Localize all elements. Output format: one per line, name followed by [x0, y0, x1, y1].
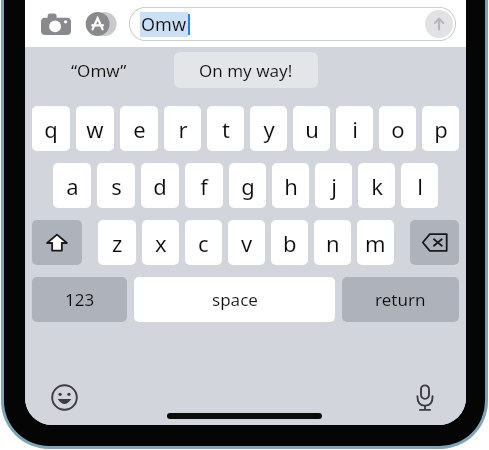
button[interactable]: j — [315, 163, 352, 208]
staticText: h — [284, 171, 298, 201]
staticText: s — [111, 171, 122, 201]
button[interactable]: i — [336, 106, 373, 151]
staticText: u — [305, 114, 319, 144]
button[interactable]: y — [250, 106, 287, 151]
button[interactable]: s — [97, 163, 135, 208]
staticText: return — [375, 288, 426, 311]
staticText: b — [283, 228, 297, 258]
button[interactable]: Camera — [39, 7, 73, 41]
button[interactable]: h — [272, 163, 309, 208]
button[interactable]: w — [76, 106, 114, 151]
button[interactable]: g — [229, 163, 266, 208]
button[interactable]: c — [185, 220, 222, 265]
staticText: c — [198, 228, 209, 258]
staticText: space — [212, 288, 258, 311]
button[interactable]: u — [293, 106, 330, 151]
button[interactable]: z — [98, 220, 136, 265]
button[interactable]: “Omw” — [25, 47, 172, 93]
staticText: l — [417, 171, 423, 201]
staticText: i — [352, 114, 358, 144]
button[interactable]: b — [271, 220, 308, 265]
staticText: r — [178, 114, 188, 144]
staticText: a — [66, 171, 79, 201]
staticText: m — [365, 228, 386, 258]
button[interactable]: p — [422, 106, 459, 151]
staticText: e — [133, 114, 146, 144]
staticText: d — [153, 171, 167, 201]
button[interactable]: Apps — [83, 7, 117, 41]
button[interactable]: x — [142, 220, 179, 265]
button[interactable]: a — [53, 163, 91, 208]
button[interactable]: f — [185, 163, 223, 208]
staticText: t — [222, 114, 230, 144]
button[interactable]: m — [357, 220, 394, 265]
staticText: v — [241, 228, 253, 258]
button[interactable]: q — [32, 106, 70, 151]
button[interactable]: Shift — [32, 220, 82, 265]
button[interactable]: r — [164, 106, 201, 151]
button[interactable]: d — [141, 163, 179, 208]
staticText: w — [86, 114, 104, 144]
staticText: “Omw” — [71, 59, 127, 82]
button[interactable]: l — [401, 163, 438, 208]
button[interactable]: return — [342, 277, 459, 322]
button[interactable]: Emoji — [47, 380, 81, 414]
staticText: n — [326, 228, 340, 258]
button[interactable]: Omw — [129, 7, 456, 41]
button[interactable]: On my way! — [174, 52, 318, 88]
staticText: 123 — [65, 288, 95, 311]
staticText: g — [241, 171, 255, 201]
button[interactable]: e — [120, 106, 158, 151]
button[interactable]: Send — [425, 10, 453, 38]
button[interactable]: o — [379, 106, 416, 151]
staticText: f — [200, 171, 208, 201]
staticText: y — [263, 114, 275, 144]
staticText: j — [331, 171, 337, 201]
staticText: k — [371, 171, 383, 201]
button[interactable]: Dictation — [408, 380, 442, 414]
staticText: o — [391, 114, 405, 144]
staticText: p — [434, 114, 448, 144]
staticText: On my way! — [199, 59, 293, 82]
button[interactable]: k — [358, 163, 395, 208]
staticText: q — [44, 114, 58, 144]
button[interactable]: space — [134, 277, 335, 322]
staticText: z — [112, 228, 123, 258]
button[interactable]: 123 — [32, 277, 127, 322]
staticText: Omw — [141, 12, 187, 37]
button[interactable]: t — [207, 106, 244, 151]
staticText: x — [155, 228, 167, 258]
button[interactable]: Backspace — [410, 220, 459, 265]
button[interactable]: n — [314, 220, 351, 265]
button[interactable]: v — [228, 220, 265, 265]
